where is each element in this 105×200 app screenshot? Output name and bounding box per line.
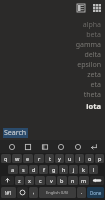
- button[interactable]: Grid view: [91, 1, 103, 15]
- button[interactable]: Emoji: [17, 187, 28, 198]
- button[interactable]: Toolbar action 6: [88, 141, 99, 152]
- button[interactable]: y: [55, 154, 64, 163]
- staticText: w: [15, 155, 20, 162]
- button[interactable]: zeta: [0, 70, 105, 80]
- button[interactable]: Toolbar action 5: [72, 141, 83, 152]
- staticText: h: [62, 166, 66, 173]
- staticText: q: [4, 155, 8, 162]
- button[interactable]: r: [34, 154, 44, 163]
- button[interactable]: f: [39, 165, 48, 174]
- staticText: p: [98, 155, 102, 162]
- button[interactable]: x: [25, 176, 34, 185]
- staticText: m: [81, 177, 87, 184]
- staticText: English (US): [46, 190, 69, 195]
- staticText: i: [79, 155, 81, 162]
- staticText: eta: [90, 80, 101, 90]
- staticText: l: [93, 166, 95, 173]
- button[interactable]: l: [89, 165, 98, 174]
- staticText: beta: [86, 30, 101, 40]
- button[interactable]: p: [95, 154, 104, 163]
- staticText: r: [38, 155, 41, 162]
- button[interactable]: Shift: [1, 176, 14, 185]
- button[interactable]: w: [12, 154, 22, 163]
- staticText: Search: [4, 128, 27, 138]
- button[interactable]: eta: [0, 80, 105, 90]
- button[interactable]: i: [75, 154, 84, 163]
- button[interactable]: n: [68, 176, 78, 185]
- staticText: iota: [86, 101, 101, 111]
- staticText: u: [68, 155, 72, 162]
- button[interactable]: j: [69, 165, 78, 174]
- button[interactable]: iota: [0, 100, 105, 111]
- staticText: e: [26, 155, 30, 162]
- button[interactable]: e: [23, 154, 33, 163]
- staticText: d: [32, 166, 36, 173]
- staticText: j: [73, 166, 75, 173]
- staticText: o: [88, 155, 92, 162]
- button[interactable]: Toolbar action 3: [39, 141, 50, 152]
- staticText: k: [82, 166, 85, 173]
- button[interactable]: Backspace: [90, 176, 104, 185]
- staticText: .: [81, 189, 83, 196]
- staticText: gamma: [75, 40, 101, 50]
- button[interactable]: Search: [0, 126, 105, 140]
- button[interactable]: c: [35, 176, 45, 185]
- staticText: epsilon: [77, 60, 101, 70]
- staticText: theta: [83, 90, 101, 100]
- staticText: !#1: [5, 190, 12, 196]
- button[interactable]: s: [19, 165, 28, 174]
- button[interactable]: alpha: [0, 20, 105, 30]
- button[interactable]: u: [65, 154, 74, 163]
- staticText: b: [60, 177, 64, 184]
- staticText: g: [52, 166, 56, 173]
- staticText: a: [11, 166, 15, 173]
- staticText: c: [39, 177, 42, 184]
- button[interactable]: v: [46, 176, 56, 185]
- button[interactable]: Toolbar action 4: [55, 141, 66, 152]
- button[interactable]: Done: [87, 187, 104, 198]
- staticText: n: [71, 177, 75, 184]
- button[interactable]: Toolbar action 2: [22, 141, 33, 152]
- button[interactable]: d: [29, 165, 38, 174]
- staticText: f: [43, 166, 45, 173]
- button[interactable]: t: [45, 154, 54, 163]
- button[interactable]: q: [1, 154, 11, 163]
- button[interactable]: g: [49, 165, 58, 174]
- button[interactable]: List view: [74, 1, 88, 15]
- button[interactable]: !#1: [1, 187, 16, 198]
- staticText: zeta: [87, 70, 101, 80]
- staticText: v: [50, 177, 53, 184]
- staticText: delta: [84, 50, 101, 60]
- button[interactable]: a: [8, 165, 18, 174]
- button[interactable]: delta: [0, 50, 105, 60]
- button[interactable]: z: [15, 176, 24, 185]
- button[interactable]: .: [77, 187, 86, 198]
- staticText: s: [22, 166, 25, 173]
- staticText: y: [58, 155, 61, 162]
- staticText: alpha: [82, 20, 101, 30]
- button[interactable]: gamma: [0, 40, 105, 50]
- button[interactable]: k: [79, 165, 88, 174]
- button[interactable]: o: [85, 154, 94, 163]
- button[interactable]: beta: [0, 30, 105, 40]
- button[interactable]: h: [59, 165, 68, 174]
- staticText: Done: [90, 190, 102, 196]
- button[interactable]: b: [57, 176, 67, 185]
- staticText: x: [28, 177, 31, 184]
- button[interactable]: theta: [0, 90, 105, 100]
- button[interactable]: epsilon: [0, 60, 105, 70]
- button[interactable]: ,: [29, 187, 38, 198]
- staticText: ,: [33, 189, 35, 196]
- button[interactable]: m: [79, 176, 89, 185]
- button[interactable]: English (US): [39, 187, 76, 198]
- staticText: z: [18, 177, 21, 184]
- button[interactable]: Toolbar action 1: [6, 141, 17, 152]
- staticText: t: [49, 155, 51, 162]
